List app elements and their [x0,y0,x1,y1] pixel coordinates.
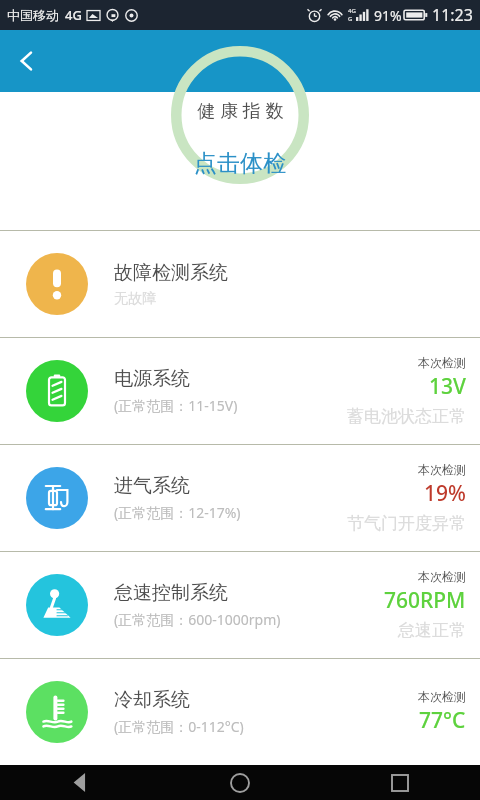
staticText: 11:23 [432,4,473,26]
staticText: 4G [65,6,82,24]
button[interactable]: 故障检测系统 [0,231,480,337]
staticText: 健 康 指 数 [197,98,284,123]
button[interactable]: Back [0,765,160,800]
staticText: 蓄电池状态正常 [347,406,466,427]
staticText: (正常范围：11-15V) [114,396,238,415]
staticText: 怠速控制系统 [114,581,228,605]
staticText: 中国移动 [7,7,59,23]
staticText: 本次检测 [418,355,466,370]
button[interactable]: Recent apps [320,765,480,800]
button[interactable]: 怠速控制系统 [0,552,480,658]
staticText: (正常范围：0-112°C) [114,717,244,736]
staticText: 电源系统 [114,367,190,391]
staticText: 怠速正常 [398,620,466,641]
staticText: 点击体检 [194,149,286,178]
button[interactable]: 电源系统 [0,338,480,444]
staticText: (正常范围：600-1000rpm) [114,610,281,629]
staticText: 冷却系统 [114,688,190,712]
staticText: 4G [348,7,356,15]
staticText: 13V [429,372,466,401]
button[interactable]: Back [0,34,54,88]
button[interactable]: 进气系统 [0,445,480,551]
staticText: 760RPM [384,586,466,615]
staticText: 本次检测 [418,689,466,704]
button[interactable]: Home [160,765,320,800]
staticText: 91% [374,6,402,25]
staticText: 故障检测系统 [114,261,228,285]
staticText: (正常范围：12-17%) [114,503,241,522]
staticText: G [348,15,353,23]
staticText: 无故障 [114,290,156,308]
staticText: 节气门开度异常 [347,513,466,534]
staticText: 77°C [419,706,466,735]
staticText: 19% [424,479,466,508]
button[interactable]: 冷却系统 [0,659,480,765]
staticText: 本次检测 [418,462,466,477]
staticText: 本次检测 [418,569,466,584]
staticText: 进气系统 [114,474,190,498]
button[interactable]: 健 康 指 数 [149,46,331,184]
